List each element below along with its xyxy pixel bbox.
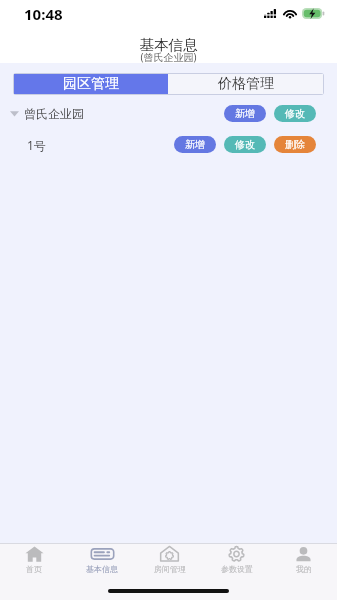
staticText: 删除 — [285, 138, 305, 151]
staticText: 修改 — [235, 138, 255, 151]
staticText: 房间管理 — [154, 564, 186, 574]
staticText: 修改 — [285, 107, 305, 120]
button[interactable]: Rooms — [136, 544, 203, 576]
button[interactable]: 修改 — [224, 136, 266, 153]
button[interactable]: 修改 — [274, 105, 316, 122]
staticText: 参数设置 — [221, 564, 253, 574]
staticText: 新增 — [185, 138, 205, 151]
button[interactable]: Home — [0, 544, 68, 576]
button[interactable]: 新增 — [174, 136, 216, 153]
staticText: 1号 — [27, 137, 46, 153]
staticText: 园区管理 — [63, 75, 119, 93]
button[interactable]: 新增 — [224, 105, 266, 122]
button[interactable]: Settings — [203, 544, 270, 576]
button[interactable]: Basic info — [68, 544, 136, 576]
button[interactable]: 园区管理 — [14, 74, 168, 94]
staticText: 曾氏企业园 — [24, 106, 84, 121]
button[interactable]: 删除 — [274, 136, 316, 153]
staticText: 我的 — [296, 564, 312, 574]
staticText: 首页 — [26, 564, 42, 574]
button[interactable]: 曾氏企业园 — [0, 98, 337, 129]
staticText: 基本信息 — [0, 36, 337, 54]
button[interactable]: 价格管理 — [168, 74, 323, 94]
staticText: 价格管理 — [218, 75, 274, 93]
staticText: 基本信息 — [86, 564, 118, 574]
button[interactable]: Profile — [270, 544, 337, 576]
staticText: (曾氏企业园) — [0, 50, 337, 64]
button[interactable]: 1号 — [0, 129, 337, 160]
staticText: 10:48 — [24, 4, 63, 24]
staticText: 新增 — [235, 107, 255, 120]
